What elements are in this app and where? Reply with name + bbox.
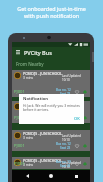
staticText: Seat 23: [60, 164, 71, 168]
button[interactable]: Favorite: [74, 89, 80, 95]
staticText: Last Updated 10:10: [62, 134, 88, 142]
staticText: PJ001: [14, 89, 25, 95]
staticText: Last Updated 10:10: [62, 161, 88, 169]
staticText: 3 mins: [23, 136, 33, 140]
button[interactable]: Back: [17, 170, 37, 182]
button[interactable]: OK: [73, 116, 81, 121]
button[interactable]: Recent apps: [66, 170, 86, 182]
button[interactable]: Favorite: [74, 115, 80, 121]
staticText: Get onboarded just-in-time: [17, 5, 86, 12]
staticText: Bus no. 12: [56, 88, 71, 92]
staticText: PJ001: [14, 143, 25, 149]
button[interactable]: Open navigation menu: [12, 47, 24, 57]
staticText: Last Updated 10:10: [62, 74, 88, 82]
button[interactable]: PCMC/JS - JUN SCHOOL: [12, 70, 90, 97]
button[interactable]: Home: [41, 170, 61, 182]
staticText: PCMC/JS - JUN SCHOOL: [23, 131, 62, 136]
button[interactable]: Favorite: [74, 143, 80, 149]
button[interactable]: Notify me: [82, 161, 88, 167]
staticText: OK: [74, 116, 80, 121]
staticText: Hi Jack. We will notify you 3 minutes be…: [23, 103, 80, 112]
staticText: Seat 23: [60, 146, 71, 150]
staticText: PCMC/JS - JUN SCHOOL: [23, 158, 62, 163]
button[interactable]: Notify me: [82, 115, 88, 121]
button[interactable]: PCMC/JS - JUN SCHOOL: [12, 130, 90, 151]
staticText: with push notification: [24, 12, 79, 19]
staticText: Notification: [23, 96, 49, 102]
staticText: PJ001: [14, 115, 25, 121]
staticText: PCMC/JS - JUN SCHOOL: [23, 102, 62, 107]
staticText: PCMC/JS - JUN SCHOOL: [23, 71, 62, 76]
staticText: From Nearby: [16, 61, 44, 67]
staticText: 3 mins: [23, 107, 33, 111]
staticText: Bus no. 12: [56, 142, 71, 146]
button[interactable]: PCMC/JS - JUN SCHOOL: [12, 101, 90, 123]
staticText: 3 mins: [23, 76, 33, 80]
button[interactable]: Notify me: [82, 89, 88, 95]
staticText: Bus no. 12: [56, 160, 71, 164]
button[interactable]: Notify me: [82, 143, 88, 149]
staticText: Seat 23: [60, 92, 71, 96]
staticText: PJ001: [14, 161, 25, 167]
button[interactable]: Favorite: [74, 161, 80, 167]
button[interactable]: Notification: [19, 94, 84, 124]
staticText: Last Updated 10:10: [62, 105, 88, 113]
staticText: 3 mins: [23, 163, 33, 167]
staticText: PVCity Bus: [24, 49, 52, 56]
button[interactable]: PCMC/JS - JUN SCHOOL: [12, 157, 90, 169]
